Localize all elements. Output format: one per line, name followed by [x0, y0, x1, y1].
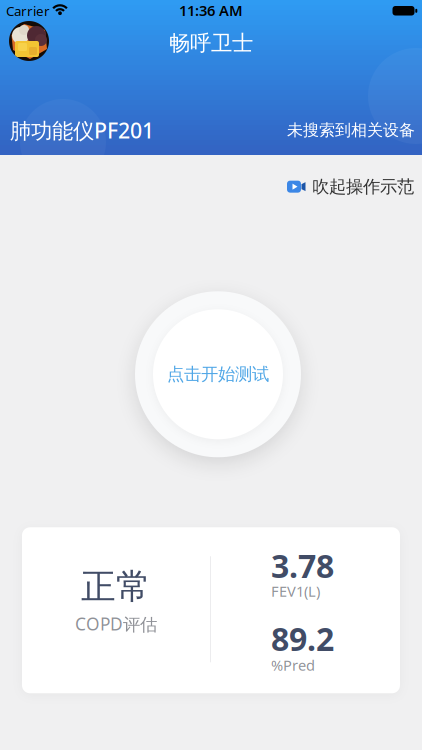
staticText: 3.78 — [271, 544, 334, 587]
staticText: 肺功能仪PF201 — [10, 116, 154, 144]
staticText: 正常 — [81, 565, 151, 608]
staticText: 畅呼卫士 — [169, 30, 253, 56]
staticText: 点击开始测试 — [167, 364, 269, 385]
staticText: 11:36 AM — [179, 0, 243, 20]
staticText: 89.2 — [271, 617, 334, 660]
staticText: COPD评估 — [75, 612, 157, 635]
staticText: 未搜索到相关设备 — [287, 120, 415, 140]
button[interactable]: 个人中心 — [9, 21, 49, 61]
staticText: %Pred — [271, 655, 315, 675]
button[interactable]: 未搜索到相关设备 — [287, 120, 415, 140]
staticText: 吹起操作示范 — [312, 176, 414, 197]
button[interactable]: 吹起操作示范 — [287, 176, 414, 197]
button[interactable]: 点击开始测试 — [135, 291, 301, 457]
staticText: FEV1(L) — [271, 581, 320, 601]
staticText: Carrier — [6, 2, 50, 20]
